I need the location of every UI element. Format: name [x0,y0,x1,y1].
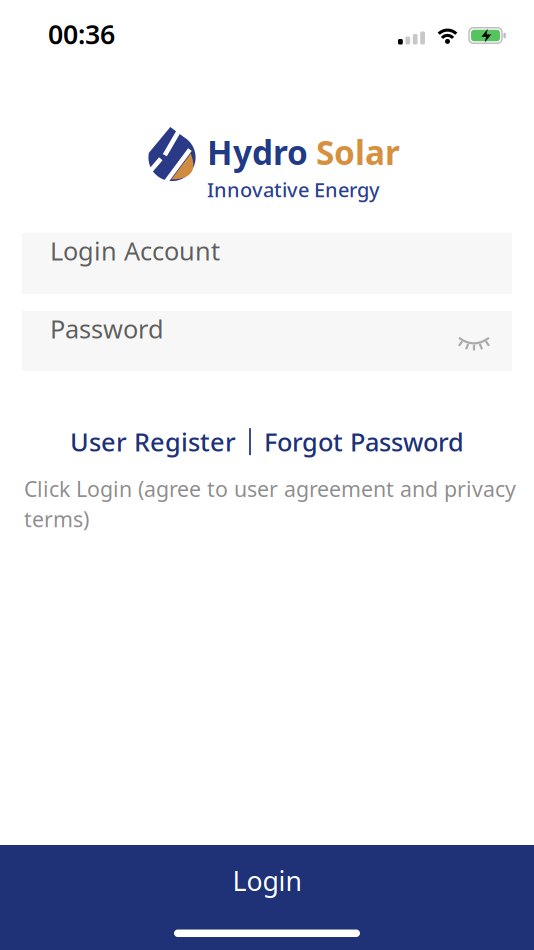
staticText: 00:36 [48,16,115,52]
staticText: Hydro [207,130,308,174]
button[interactable]: Forgot Password [264,425,464,458]
staticText: Innovative Energy [207,176,380,203]
button[interactable]: Show password [458,336,490,352]
button[interactable]: Login [0,845,534,950]
staticText: Password [50,312,164,345]
staticText: Login Account [50,234,220,267]
staticText: Click Login (agree to user agreement and… [24,474,516,503]
staticText: User Register [70,425,236,458]
button[interactable]: User Register [70,425,236,458]
staticText: terms) [24,505,89,533]
staticText: Forgot Password [264,425,464,458]
staticText: Login [232,863,301,898]
staticText: Solar [316,130,400,174]
